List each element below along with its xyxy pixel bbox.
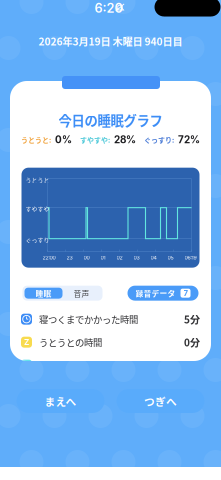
staticText: 音声 bbox=[73, 288, 89, 299]
staticText: 04 bbox=[150, 254, 156, 261]
staticText: 今日の睡眠グラフ bbox=[58, 110, 162, 130]
staticText: うとうとの時間 bbox=[39, 335, 102, 349]
staticText: ぐっすり: bbox=[144, 135, 174, 145]
staticText: 睡眠 bbox=[35, 288, 51, 299]
button[interactable]: 音声 bbox=[62, 288, 100, 299]
staticText: 寝つくまでかかった時間 bbox=[39, 312, 138, 326]
button[interactable]: つぎへ bbox=[116, 389, 204, 413]
button[interactable]: 寝つくまでかかった時間 bbox=[10, 308, 211, 331]
staticText: 5分 bbox=[184, 312, 200, 326]
staticText: うとうと: bbox=[21, 135, 51, 145]
staticText: うとうと bbox=[25, 176, 49, 184]
button[interactable]: Z bbox=[10, 331, 211, 354]
staticText: 0% bbox=[55, 134, 72, 146]
staticText: 2026年3月19日 木曜日 940日目 bbox=[38, 34, 182, 48]
staticText: 72% bbox=[178, 134, 200, 146]
button[interactable]: 録音データ bbox=[127, 286, 198, 301]
staticText: Z bbox=[24, 337, 29, 347]
staticText: つぎへ bbox=[144, 393, 177, 409]
staticText: すやすやの時間 bbox=[39, 358, 102, 372]
staticText: すやすや: bbox=[80, 135, 110, 145]
button[interactable]: 睡眠 bbox=[24, 288, 62, 299]
staticText: 録音データ bbox=[135, 288, 175, 299]
staticText: 02 bbox=[116, 254, 122, 261]
staticText: 23 bbox=[66, 254, 72, 261]
staticText: すやすや bbox=[25, 205, 49, 213]
staticText: 7 bbox=[183, 288, 187, 298]
staticText: 28% bbox=[114, 134, 136, 146]
staticText: ぐっすり bbox=[25, 236, 49, 244]
button[interactable]: すやすやの時間 bbox=[10, 354, 211, 377]
staticText: 01 bbox=[100, 254, 105, 261]
staticText: まえへ bbox=[44, 393, 76, 409]
staticText: 2時間47分 bbox=[152, 358, 200, 372]
staticText: 6:20 bbox=[94, 0, 122, 16]
staticText: 05 bbox=[167, 254, 173, 261]
staticText: 06:19 bbox=[184, 254, 196, 261]
staticText: 0分 bbox=[184, 335, 200, 349]
staticText: 03 bbox=[133, 254, 139, 261]
staticText: 22:00 bbox=[42, 254, 55, 261]
staticText: 00 bbox=[83, 254, 89, 261]
button[interactable]: まえへ bbox=[16, 389, 104, 413]
